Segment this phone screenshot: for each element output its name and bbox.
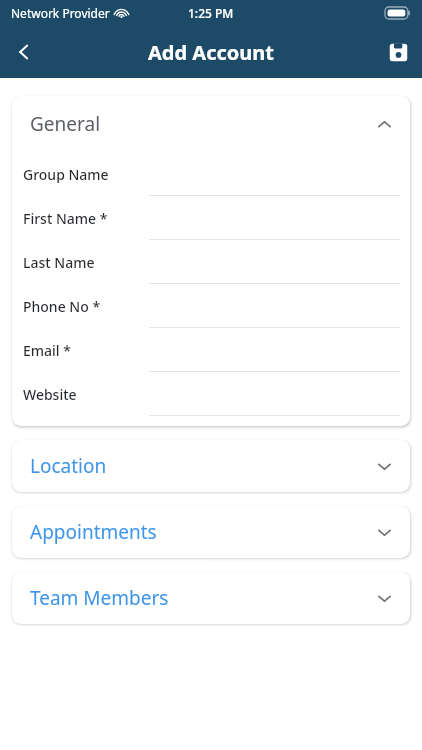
staticText: Appointments	[30, 519, 157, 545]
button[interactable]: Back	[0, 28, 48, 76]
staticText: Last Name	[23, 253, 95, 272]
button[interactable]: Website	[12, 372, 410, 416]
staticText: First Name *	[23, 209, 108, 228]
staticText: Network Provider	[11, 5, 110, 21]
staticText: Phone No *	[23, 297, 101, 316]
button[interactable]: Location	[12, 440, 410, 492]
staticText: Group Name	[23, 165, 109, 184]
button[interactable]: Email *	[12, 328, 410, 372]
button[interactable]: Group Name	[12, 152, 410, 196]
staticText: Add Account	[148, 39, 274, 66]
staticText: Website	[23, 385, 77, 404]
button[interactable]: First Name *	[12, 196, 410, 240]
staticText: 1:25 PM	[188, 5, 234, 21]
button[interactable]: Last Name	[12, 240, 410, 284]
button[interactable]: Team Members	[12, 572, 410, 624]
button[interactable]: General	[12, 96, 410, 152]
staticText: Location	[30, 453, 107, 479]
staticText: Team Members	[30, 585, 169, 611]
button[interactable]: Save	[374, 28, 422, 76]
button[interactable]: Phone No *	[12, 284, 410, 328]
button[interactable]: Appointments	[12, 506, 410, 558]
staticText: Email *	[23, 341, 71, 360]
staticText: General	[30, 111, 101, 137]
